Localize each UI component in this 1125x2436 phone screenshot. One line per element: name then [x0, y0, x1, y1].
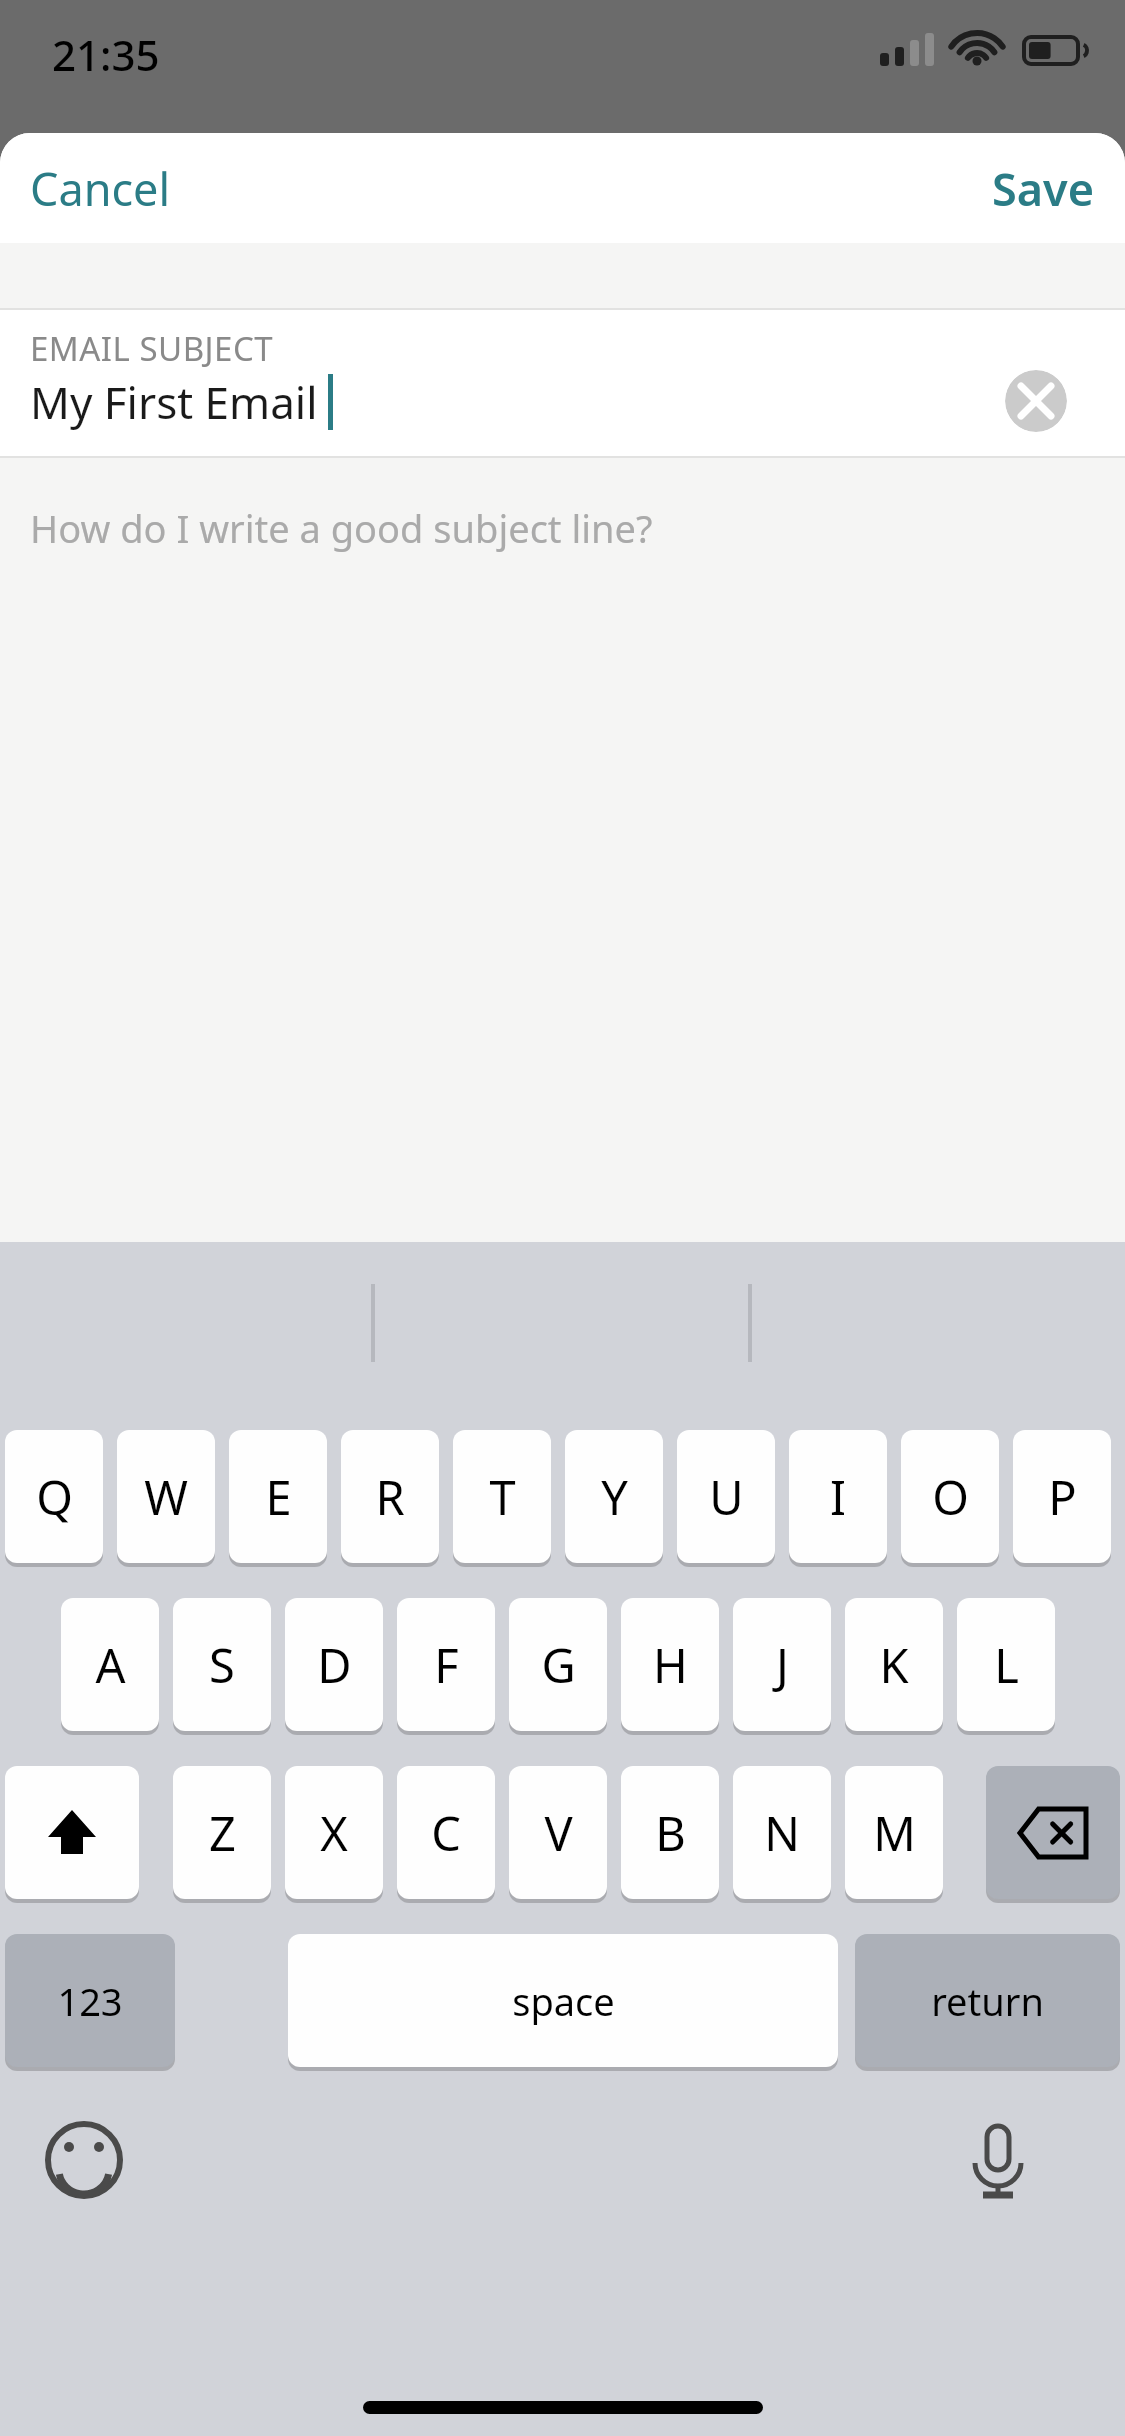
button[interactable]: L	[957, 1598, 1055, 1731]
staticText: S	[209, 1633, 235, 1697]
staticText: O	[932, 1465, 969, 1529]
button[interactable]: Emoji keyboard	[36, 2112, 131, 2207]
button[interactable]: K	[845, 1598, 943, 1731]
button[interactable]: Cancel	[0, 138, 197, 239]
staticText: B	[655, 1801, 686, 1865]
button[interactable]: Clear text	[1005, 370, 1067, 432]
staticText: C	[431, 1801, 461, 1865]
button[interactable]: W	[117, 1430, 215, 1563]
button[interactable]: N	[733, 1766, 831, 1899]
staticText: return	[931, 1975, 1044, 2027]
button[interactable]: Shift	[5, 1766, 139, 1899]
button[interactable]: D	[285, 1598, 383, 1731]
staticText: Y	[601, 1465, 628, 1529]
staticText: E	[265, 1465, 292, 1529]
button[interactable]: return	[855, 1934, 1120, 2067]
button[interactable]: M	[845, 1766, 943, 1899]
staticText: Q	[36, 1465, 73, 1529]
staticText: W	[144, 1465, 188, 1529]
staticText: F	[434, 1633, 459, 1697]
staticText: T	[489, 1465, 516, 1529]
button[interactable]: V	[509, 1766, 607, 1899]
staticText: U	[709, 1465, 744, 1529]
button[interactable]: Dictation	[950, 2112, 1045, 2207]
button[interactable]: I	[789, 1430, 887, 1563]
staticText: R	[375, 1465, 405, 1529]
button[interactable]: Backspace	[986, 1766, 1120, 1899]
button[interactable]: R	[341, 1430, 439, 1563]
button[interactable]: 123	[5, 1934, 175, 2067]
button[interactable]: C	[397, 1766, 495, 1899]
button[interactable]: Save	[966, 138, 1125, 239]
button[interactable]: A	[61, 1598, 159, 1731]
button[interactable]: G	[509, 1598, 607, 1731]
staticText: X	[320, 1801, 348, 1865]
button[interactable]: Y	[565, 1430, 663, 1563]
staticText: Cancel	[30, 158, 171, 219]
button[interactable]: P	[1013, 1430, 1111, 1563]
button[interactable]: F	[397, 1598, 495, 1731]
staticText: Save	[992, 158, 1095, 219]
staticText: D	[317, 1633, 352, 1697]
staticText: How do I write a good subject line?	[30, 502, 653, 554]
staticText: V	[544, 1801, 573, 1865]
staticText: K	[879, 1633, 909, 1697]
button[interactable]: E	[229, 1430, 327, 1563]
staticText: I	[830, 1465, 846, 1529]
staticText: J	[776, 1633, 789, 1697]
button[interactable]: X	[285, 1766, 383, 1899]
button[interactable]: S	[173, 1598, 271, 1731]
button[interactable]: B	[621, 1766, 719, 1899]
button[interactable]: H	[621, 1598, 719, 1731]
staticText: A	[95, 1633, 126, 1697]
staticText: Z	[209, 1801, 236, 1865]
staticText: P	[1048, 1465, 1077, 1529]
button[interactable]: U	[677, 1430, 775, 1563]
staticText: H	[653, 1633, 688, 1697]
staticText: EMAIL SUBJECT	[30, 326, 274, 371]
staticText: space	[512, 1975, 615, 2027]
button[interactable]: EMAIL SUBJECT	[0, 310, 1125, 456]
button[interactable]: space	[288, 1934, 838, 2067]
staticText: 21:35	[52, 26, 160, 83]
button[interactable]: J	[733, 1598, 831, 1731]
button[interactable]: O	[901, 1430, 999, 1563]
staticText: N	[764, 1801, 800, 1865]
staticText: L	[994, 1633, 1019, 1697]
staticText: 123	[57, 1975, 123, 2027]
button[interactable]: T	[453, 1430, 551, 1563]
staticText: My First Email	[30, 372, 318, 432]
button[interactable]: Z	[173, 1766, 271, 1899]
button[interactable]: Q	[5, 1430, 103, 1563]
staticText: G	[541, 1633, 576, 1697]
staticText: M	[873, 1801, 916, 1865]
